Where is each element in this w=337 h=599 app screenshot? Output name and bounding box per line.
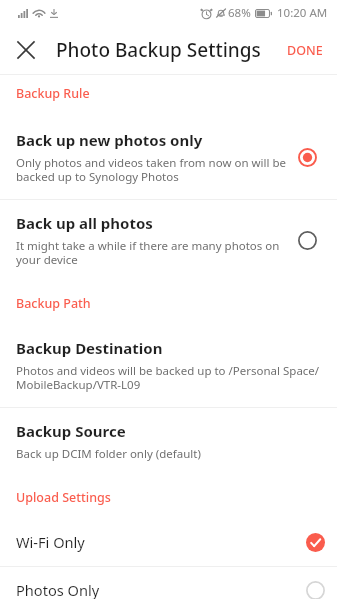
button[interactable]: Back up all photos xyxy=(0,200,337,282)
staticText: Backup Destination xyxy=(16,338,163,358)
button[interactable]: Backup Source xyxy=(0,408,337,476)
staticText: Only photos and videos taken from now on… xyxy=(16,155,288,185)
staticText: Back up new photos only xyxy=(16,130,203,150)
button[interactable]: Photos Only xyxy=(0,567,337,599)
staticText: Backup Path xyxy=(16,295,337,312)
staticText: Upload Settings xyxy=(16,489,337,506)
staticText: Back up DCIM folder only (default) xyxy=(16,446,201,462)
button[interactable]: Backup Destination xyxy=(0,325,337,407)
staticText: 68% xyxy=(228,5,251,21)
staticText: Photos Only xyxy=(16,580,100,599)
button[interactable]: Back up new photos only xyxy=(0,117,337,199)
staticText: 10:20 AM xyxy=(277,5,328,21)
staticText: Backup Rule xyxy=(16,85,337,102)
staticText: DONE xyxy=(287,42,323,59)
staticText: Photo Backup Settings xyxy=(56,37,261,63)
button[interactable]: Wi-Fi Only xyxy=(0,519,337,566)
staticText: Back up all photos xyxy=(16,213,153,233)
staticText: Backup Source xyxy=(16,421,126,441)
button[interactable]: Close xyxy=(8,32,44,68)
staticText: Photos and videos will be backed up to /… xyxy=(16,363,325,393)
staticText: Wi-Fi Only xyxy=(16,532,85,552)
button[interactable]: DONE xyxy=(273,30,337,71)
staticText: It might take a while if there are many … xyxy=(16,238,288,268)
